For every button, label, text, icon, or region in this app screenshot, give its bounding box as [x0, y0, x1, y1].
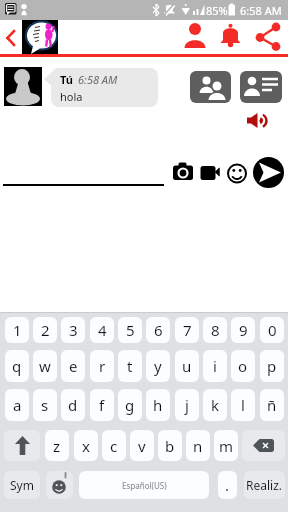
staticText: b [165, 436, 175, 456]
button[interactable] [219, 23, 242, 49]
staticText: q [12, 356, 22, 376]
button[interactable]: o [231, 350, 255, 382]
staticText: i [213, 356, 217, 376]
button[interactable]: u [175, 350, 199, 382]
button[interactable]: d [61, 389, 85, 421]
staticText: 2 [41, 320, 50, 340]
button[interactable]: 7 [175, 317, 199, 343]
staticText: ñ [267, 395, 277, 415]
staticText: 0 [268, 320, 277, 340]
staticText: j [185, 395, 189, 415]
staticText: 9 [239, 320, 248, 340]
staticText: v [138, 436, 146, 456]
staticText: 85% [206, 3, 228, 18]
staticText: 1 [13, 320, 22, 340]
button[interactable]: g [118, 389, 142, 421]
staticText: Sym [10, 477, 34, 493]
button[interactable]: h [146, 389, 170, 421]
button[interactable]: . [218, 471, 237, 499]
button[interactable]: n [186, 430, 210, 461]
button[interactable]: v [130, 430, 154, 461]
staticText: e [69, 356, 78, 376]
button[interactable]: w [33, 350, 57, 382]
staticText: 6:58 AM [240, 3, 282, 18]
staticText: w [39, 356, 51, 376]
staticText: m [219, 436, 234, 456]
button[interactable] [184, 23, 206, 48]
button[interactable] [240, 71, 282, 103]
button[interactable]: l [231, 389, 255, 421]
staticText: 3 [69, 320, 78, 340]
staticText: 6:58 AM [78, 72, 118, 87]
staticText: g [125, 395, 135, 415]
button[interactable]: Tú [51, 68, 158, 107]
staticText: n [193, 436, 203, 456]
button[interactable]: f [90, 389, 114, 421]
staticText: p [267, 356, 277, 376]
button[interactable]: c [102, 430, 126, 461]
button[interactable]: Sym [4, 471, 40, 499]
staticText: c [110, 436, 118, 456]
staticText: y [154, 356, 162, 376]
staticText: u [182, 356, 192, 376]
button[interactable] [172, 162, 194, 181]
button[interactable]: 3 [61, 317, 85, 343]
button[interactable]: s [33, 389, 57, 421]
button[interactable]: 2 [33, 317, 57, 343]
staticText: x [82, 436, 90, 456]
button[interactable]: y [146, 350, 170, 382]
staticText: 4 [98, 320, 107, 340]
button[interactable]: Realiz. [244, 471, 285, 499]
button[interactable]: q [5, 350, 29, 382]
button[interactable]: a [5, 389, 29, 421]
button[interactable]: Español(US) [79, 471, 209, 499]
staticText: h [153, 395, 163, 415]
button[interactable]: b [158, 430, 182, 461]
staticText: Realiz. [246, 477, 283, 493]
staticText: r [99, 356, 106, 376]
staticText: z [53, 436, 61, 456]
button[interactable] [4, 430, 40, 461]
staticText: 5 [126, 320, 135, 340]
button[interactable]: k [203, 389, 227, 421]
button[interactable]: 8 [203, 317, 227, 343]
button[interactable]: t [118, 350, 142, 382]
button[interactable] [0, 20, 22, 54]
staticText: d [68, 395, 78, 415]
button[interactable]: e [61, 350, 85, 382]
button[interactable] [190, 71, 231, 103]
button[interactable]: 5 [118, 317, 142, 343]
button[interactable] [22, 20, 58, 54]
button[interactable]: j [175, 389, 199, 421]
button[interactable] [253, 157, 284, 188]
staticText: f [99, 395, 105, 415]
staticText: Español(US) [122, 480, 167, 491]
button[interactable]: ñ [260, 389, 284, 421]
button[interactable] [227, 163, 248, 184]
button[interactable]: m [214, 430, 238, 461]
button[interactable]: i [203, 350, 227, 382]
staticText: t [127, 356, 133, 376]
button[interactable] [242, 430, 285, 461]
button[interactable] [46, 471, 73, 499]
button[interactable]: z [45, 430, 69, 461]
staticText: Tú [60, 72, 73, 87]
button[interactable]: p [260, 350, 284, 382]
staticText: o [238, 356, 248, 376]
button[interactable]: 1 [5, 317, 29, 343]
staticText: 6 [154, 320, 163, 340]
button[interactable]: r [90, 350, 114, 382]
staticText: k [211, 395, 220, 415]
button[interactable]: 9 [231, 317, 255, 343]
button[interactable]: x [74, 430, 98, 461]
button[interactable] [254, 23, 281, 49]
button[interactable]: 4 [90, 317, 114, 343]
button[interactable] [247, 113, 268, 128]
staticText: a [13, 395, 22, 415]
staticText: . [225, 475, 230, 495]
button[interactable]: 6 [146, 317, 170, 343]
button[interactable] [200, 166, 220, 180]
staticText: hola [60, 89, 83, 104]
button[interactable]: 0 [260, 317, 284, 343]
